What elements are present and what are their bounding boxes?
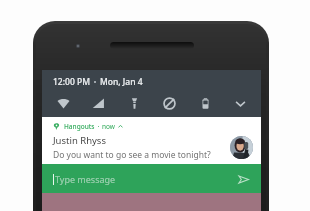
staticText: Type message: [55, 173, 116, 185]
staticText: now: [102, 122, 115, 131]
button[interactable]: Wi-Fi: [50, 93, 76, 113]
button[interactable]: Hangouts: [42, 117, 261, 164]
button[interactable]: Justin Rhyss avatar: [230, 136, 253, 159]
button[interactable]: Expand: [227, 93, 253, 113]
staticText: Do you want to go see a movie tonight?: [53, 149, 211, 161]
staticText: Mon, Jan 4: [100, 76, 143, 88]
button[interactable]: Type message: [42, 164, 261, 193]
button[interactable]: Send: [236, 172, 250, 186]
staticText: 12:00 PM: [53, 76, 90, 88]
button[interactable]: Mobile data: [85, 93, 111, 113]
button[interactable]: Flashlight: [121, 93, 147, 113]
button[interactable]: Do not disturb: [156, 93, 182, 113]
staticText: Justin Rhyss: [53, 134, 106, 147]
staticText: Hangouts: [64, 122, 95, 131]
button[interactable]: Battery: [192, 93, 218, 113]
